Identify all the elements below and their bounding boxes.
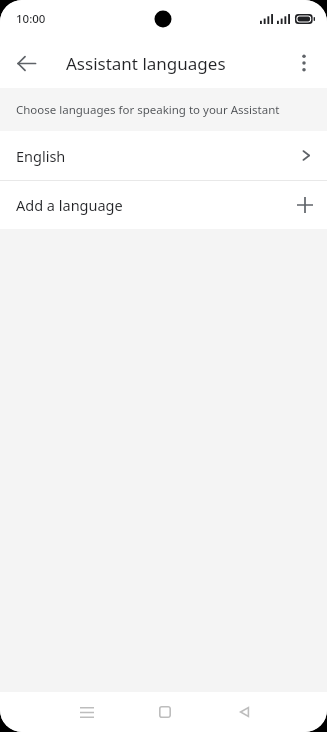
staticText: 10:00 xyxy=(16,11,46,27)
button[interactable]: Recent apps xyxy=(67,692,107,732)
button[interactable]: English xyxy=(0,131,327,180)
staticText: Choose languages for speaking to your As… xyxy=(16,102,280,118)
staticText: Add a language xyxy=(16,195,297,215)
button[interactable]: Home xyxy=(145,692,185,732)
button[interactable]: Back xyxy=(224,692,264,732)
button[interactable]: Back xyxy=(8,45,44,81)
button[interactable]: More options xyxy=(286,45,322,81)
staticText: English xyxy=(16,146,302,166)
staticText: Assistant languages xyxy=(66,52,226,75)
button[interactable]: Add a language xyxy=(0,181,327,229)
